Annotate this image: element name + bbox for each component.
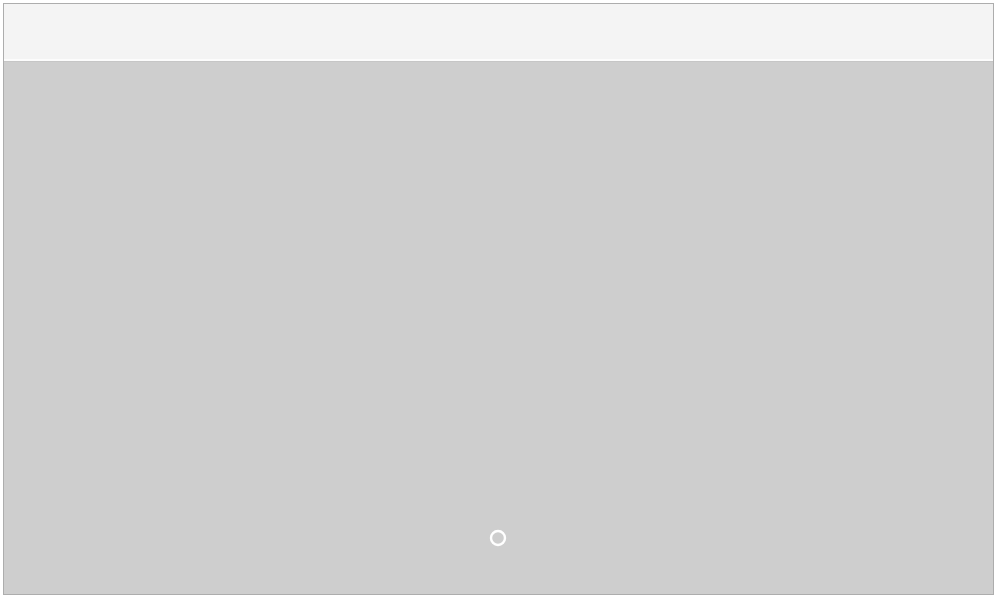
other: Loading (486, 526, 510, 550)
